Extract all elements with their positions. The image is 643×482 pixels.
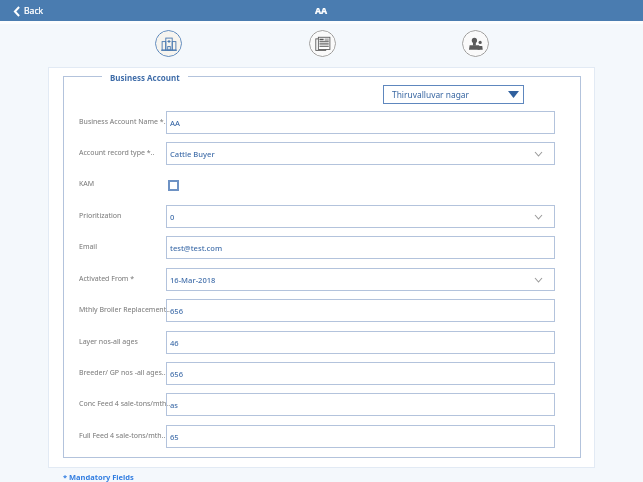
staticText: AA <box>315 5 328 17</box>
staticText: KAM <box>79 179 95 189</box>
button[interactable]: KAM checkbox <box>168 180 179 191</box>
button[interactable]: Cattle Buyer <box>166 142 555 165</box>
staticText: Conc Feed 4 sale-tons/mth.. <box>79 399 169 409</box>
staticText: Back <box>24 5 44 17</box>
staticText: test@test.com <box>170 243 223 253</box>
button[interactable]: 16-Mar-2018 <box>166 268 555 291</box>
button[interactable]: Contacts <box>462 30 489 57</box>
staticText: Email <box>79 242 97 252</box>
button[interactable]: Thiruvalluvar nagar <box>383 85 524 104</box>
staticText: 656 <box>170 306 184 316</box>
button[interactable]: 0 <box>166 205 555 228</box>
staticText: Layer nos-all ages <box>79 337 138 347</box>
staticText: 0 <box>170 212 175 222</box>
button[interactable]: Business <box>155 30 182 57</box>
button[interactable]: 656 <box>166 299 555 322</box>
button[interactable]: test@test.com <box>166 236 555 259</box>
button[interactable]: AA <box>166 111 555 134</box>
staticText: Cattle Buyer <box>170 149 215 159</box>
staticText: 16-Mar-2018 <box>170 275 216 285</box>
button[interactable]: 46 <box>166 331 555 354</box>
staticText: AA <box>170 118 180 128</box>
staticText: Business Account <box>110 72 180 83</box>
staticText: 656 <box>170 369 184 379</box>
staticText: 65 <box>170 432 179 442</box>
button[interactable]: 656 <box>166 362 555 385</box>
button[interactable]: Documents <box>309 30 336 57</box>
staticText: Business Account Name *.. <box>79 117 168 127</box>
button[interactable]: Back <box>14 5 44 17</box>
button[interactable]: 65 <box>166 425 555 448</box>
staticText: Mthly Broiler Replacement.. <box>79 305 169 315</box>
staticText: Account record type *.. <box>79 148 155 158</box>
staticText: Thiruvalluvar nagar <box>392 89 469 100</box>
staticText: Prioritization <box>79 211 122 221</box>
button[interactable]: as <box>166 393 555 416</box>
staticText: as <box>170 400 179 410</box>
staticText: * Mandatory Fields <box>63 472 134 482</box>
staticText: Activated From * <box>79 274 135 284</box>
staticText: 46 <box>170 338 179 348</box>
staticText: Breeder/ GP nos -all ages.. <box>79 368 166 378</box>
staticText: Full Feed 4 sale-tons/mth.. <box>79 431 166 441</box>
